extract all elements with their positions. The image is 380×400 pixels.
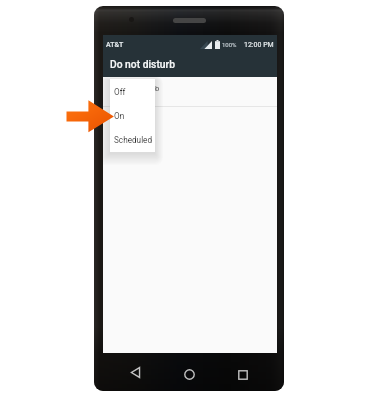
button[interactable]: Do not disturb (103, 77, 277, 106)
staticText: 12:00 PM (244, 41, 274, 49)
button[interactable]: On (110, 103, 155, 127)
staticText: On (114, 111, 125, 121)
button[interactable]: Scheduled (110, 127, 155, 151)
staticText: Do not disturb (111, 84, 160, 93)
button[interactable]: Off (110, 79, 155, 103)
staticText: Scheduled (114, 135, 153, 145)
staticText: Off (114, 87, 126, 97)
button[interactable]: Recents (238, 370, 248, 380)
staticText: Do not disturb (110, 58, 175, 70)
button[interactable]: Home (184, 369, 195, 380)
staticText: AT&T (106, 41, 124, 49)
button[interactable]: Back (131, 367, 140, 378)
staticText: 100% (222, 41, 237, 48)
